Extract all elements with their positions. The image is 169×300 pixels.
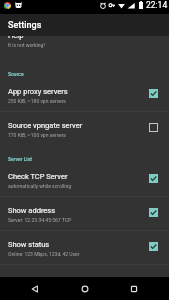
button[interactable]: Home bbox=[70, 277, 100, 300]
staticText: 22:14 bbox=[146, 0, 168, 10]
staticText: Online: 123 Mbps, 123d, 42 User bbox=[8, 251, 80, 257]
staticText: App proxy servers bbox=[8, 87, 68, 96]
staticText: Show status bbox=[8, 240, 50, 249]
button[interactable]: Recent apps bbox=[119, 277, 149, 300]
staticText: Server List bbox=[8, 156, 32, 162]
button[interactable]: Source vpngate server bbox=[0, 112, 169, 146]
staticText: Source vpngate server bbox=[8, 121, 83, 130]
staticText: Settings bbox=[8, 20, 42, 31]
button[interactable]: Show address bbox=[0, 197, 169, 231]
staticText: Source bbox=[8, 71, 24, 77]
staticText: It is not working! bbox=[8, 42, 45, 48]
staticText: Server: 12.23.34.45:567 TCP bbox=[8, 217, 72, 223]
button[interactable]: App proxy servers bbox=[0, 78, 169, 112]
button[interactable]: Back bbox=[20, 277, 50, 300]
staticText: Show address bbox=[8, 206, 56, 215]
staticText: Check TCP Server bbox=[8, 172, 68, 181]
button[interactable]: Settings bbox=[0, 14, 169, 36]
button[interactable]: Help bbox=[0, 14, 169, 61]
button[interactable]: Check TCP Server bbox=[0, 163, 169, 197]
staticText: Help bbox=[8, 31, 24, 40]
staticText: 250 KiB, ~180 vpn servers bbox=[8, 98, 66, 104]
staticText: automatically while scrolling bbox=[8, 183, 71, 189]
staticText: 770 KiB, ~100 vpn servers bbox=[8, 132, 66, 138]
button[interactable]: Show status bbox=[0, 231, 169, 265]
